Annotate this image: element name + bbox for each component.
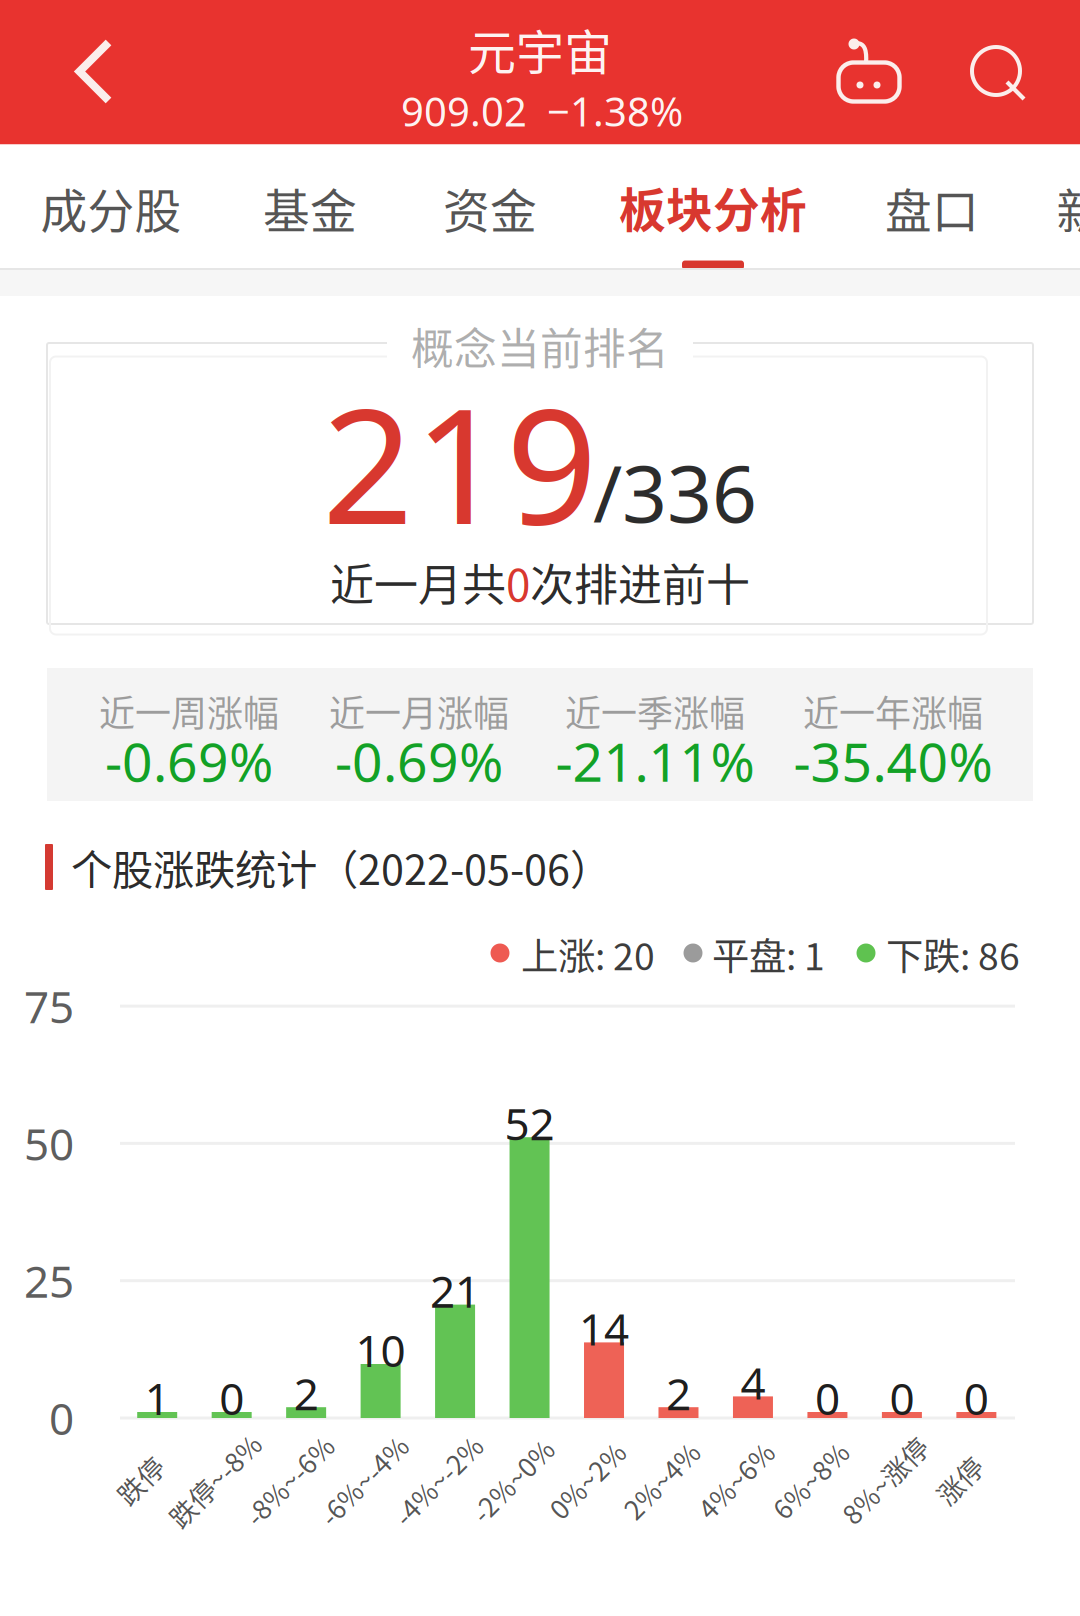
staticText: 8%~涨停: [830, 1461, 939, 1499]
staticText: 元宇宙: [468, 14, 612, 84]
button[interactable]: AI Assistant: [815, 0, 925, 143]
staticText: 新: [1056, 174, 1080, 242]
staticText: 0: [889, 1368, 914, 1428]
staticText: 25: [24, 1251, 74, 1311]
staticText: 近一月共: [330, 550, 506, 614]
staticText: 2: [294, 1363, 319, 1423]
staticText: 0: [219, 1368, 244, 1428]
button[interactable]: Search: [944, 1, 1054, 146]
staticText: 50: [24, 1113, 74, 1173]
staticText: 52: [504, 1093, 554, 1153]
staticText: 75: [24, 976, 74, 1036]
staticText: -35.40%: [793, 725, 992, 797]
button[interactable]: 盘口: [832, 146, 1032, 269]
staticText: -8%~-6%: [233, 1461, 346, 1499]
staticText: -0.69%: [335, 725, 503, 797]
staticText: 基金: [263, 174, 357, 242]
staticText: 资金: [443, 174, 537, 242]
staticText: 909.02 −1.38%: [401, 84, 683, 138]
staticText: 跌停: [113, 1461, 167, 1499]
staticText: 近一周涨幅: [99, 685, 279, 737]
staticText: 盘口: [885, 174, 979, 242]
staticText: -6%~-4%: [307, 1461, 420, 1499]
button[interactable]: 成分股: [11, 146, 211, 269]
button[interactable]: 基金: [210, 146, 410, 269]
staticText: 平盘: 1: [712, 927, 825, 981]
staticText: 近一年涨幅: [803, 685, 983, 737]
staticText: 4: [740, 1352, 765, 1412]
staticText: 上涨: 20: [521, 927, 655, 981]
staticText: 2: [666, 1363, 691, 1423]
button[interactable]: 资金: [390, 146, 590, 269]
staticText: 下跌: 86: [886, 927, 1020, 981]
staticText: -0.69%: [105, 725, 273, 797]
staticText: 板块分析: [619, 173, 807, 241]
staticText: 0: [964, 1368, 989, 1428]
staticText: 0: [49, 1388, 74, 1448]
staticText: 21: [430, 1261, 480, 1320]
staticText: -2%~0%: [460, 1461, 564, 1499]
staticText: 6%~8%: [763, 1461, 858, 1499]
staticText: 成分股: [40, 174, 181, 242]
staticText: 跌停~-8%: [156, 1461, 274, 1499]
staticText: 近一月涨幅: [329, 685, 509, 737]
staticText: 近一季涨幅: [565, 685, 745, 737]
staticText: 涨停: [932, 1461, 986, 1499]
staticText: 次排进前十: [530, 550, 750, 614]
button[interactable]: Back: [29, 0, 159, 144]
staticText: 14: [579, 1298, 629, 1358]
staticText: 个股涨跌统计（2022-05-06）: [71, 837, 611, 897]
staticText: -4%~-2%: [382, 1461, 495, 1499]
staticText: 10: [356, 1320, 406, 1380]
staticText: 0%~2%: [539, 1461, 634, 1499]
staticText: -21.11%: [555, 725, 754, 797]
staticText: 0: [815, 1368, 840, 1428]
staticText: 0: [506, 550, 530, 614]
staticText: 2%~4%: [614, 1461, 709, 1499]
staticText: /336: [593, 438, 757, 545]
staticText: 1: [145, 1368, 170, 1428]
staticText: 219: [322, 353, 598, 571]
button[interactable]: 板块分析: [598, 145, 828, 268]
staticText: 4%~6%: [688, 1461, 783, 1499]
staticText: 概念当前排名: [411, 315, 669, 377]
